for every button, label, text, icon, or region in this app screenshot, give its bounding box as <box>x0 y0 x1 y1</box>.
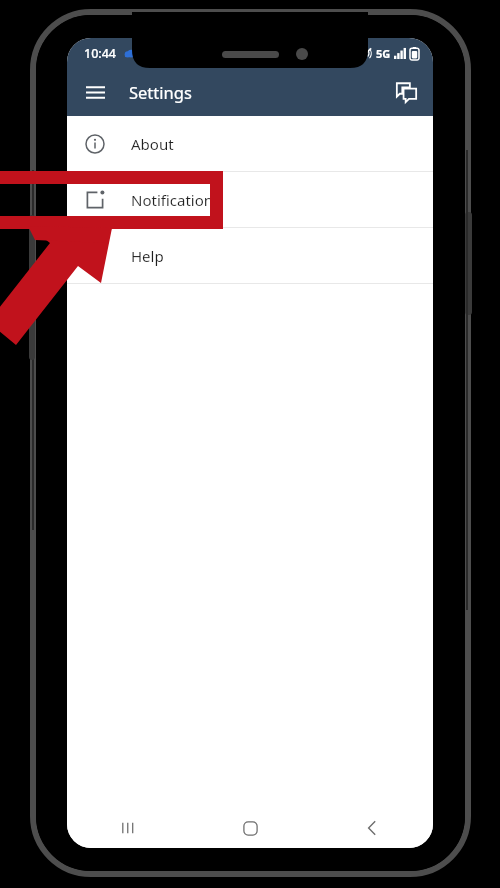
button[interactable]: Home <box>189 808 311 848</box>
staticText: 5G <box>376 46 391 61</box>
staticText: Settings <box>129 81 192 103</box>
button[interactable]: About <box>67 116 433 171</box>
staticText: About <box>131 134 174 154</box>
staticText: Help <box>131 246 164 266</box>
button[interactable]: Messages <box>385 71 427 113</box>
button[interactable]: Recent apps <box>67 808 189 848</box>
button[interactable]: Help <box>67 228 433 283</box>
button[interactable]: Open navigation menu <box>75 72 115 112</box>
staticText: 10:44 <box>84 45 117 62</box>
staticText: Notifications <box>131 190 221 210</box>
button[interactable]: Notifications <box>67 172 433 227</box>
button[interactable]: Back <box>311 808 433 848</box>
